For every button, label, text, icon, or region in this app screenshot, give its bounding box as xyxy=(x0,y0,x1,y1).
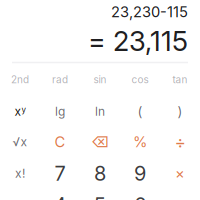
staticText: 8 xyxy=(94,161,106,186)
staticText: cos xyxy=(131,73,148,86)
button[interactable]: C xyxy=(40,126,80,157)
button[interactable]: √x xyxy=(0,126,40,157)
staticText: 7 xyxy=(54,161,65,186)
button[interactable]: 4 xyxy=(40,189,80,200)
button[interactable]: cos xyxy=(120,64,160,95)
staticText: ) xyxy=(177,103,182,119)
button[interactable]: 9 xyxy=(120,158,160,189)
button[interactable]: ( xyxy=(120,96,160,127)
staticText: ⌫ xyxy=(91,133,109,151)
button[interactable]: 2nd xyxy=(0,64,40,95)
button[interactable]: tan xyxy=(160,64,200,95)
staticText: 23,230-115 xyxy=(111,3,188,21)
staticText: ÷ xyxy=(174,131,185,152)
staticText: = 23,115 xyxy=(88,24,188,58)
button[interactable]: × xyxy=(160,158,200,189)
button[interactable]: xy xyxy=(0,96,40,127)
staticText: 6 xyxy=(134,193,146,200)
staticText: ln xyxy=(95,104,105,119)
staticText: × xyxy=(175,165,185,182)
staticText: ( xyxy=(137,103,142,119)
staticText: sin xyxy=(93,73,106,86)
button[interactable]: lg xyxy=(40,96,80,127)
button[interactable]: 6 xyxy=(120,189,160,200)
button[interactable]: ÷ xyxy=(160,126,200,157)
staticText: 5 xyxy=(94,193,106,200)
staticText: 2nd xyxy=(11,73,29,86)
staticText: 9 xyxy=(134,161,146,186)
button[interactable]: x! xyxy=(0,158,40,189)
staticText: x! xyxy=(15,166,25,181)
button[interactable]: ) xyxy=(160,96,200,127)
button[interactable]: % xyxy=(120,126,160,157)
staticText: % xyxy=(133,133,147,151)
button[interactable]: 7 xyxy=(40,158,80,189)
staticText: tan xyxy=(172,73,187,86)
button[interactable]: ln xyxy=(80,96,120,127)
button[interactable]: 5 xyxy=(80,189,120,200)
staticText: 4 xyxy=(53,193,66,200)
staticText: rad xyxy=(52,73,68,86)
staticText: lg xyxy=(55,104,65,119)
button[interactable]: 8 xyxy=(80,158,120,189)
staticText: √x xyxy=(12,135,27,149)
button[interactable]: ⌫ xyxy=(80,126,120,157)
button[interactable]: sin xyxy=(80,64,120,95)
staticText: C xyxy=(54,133,65,151)
button[interactable]: rad xyxy=(40,64,80,95)
staticText: xy xyxy=(14,104,25,119)
